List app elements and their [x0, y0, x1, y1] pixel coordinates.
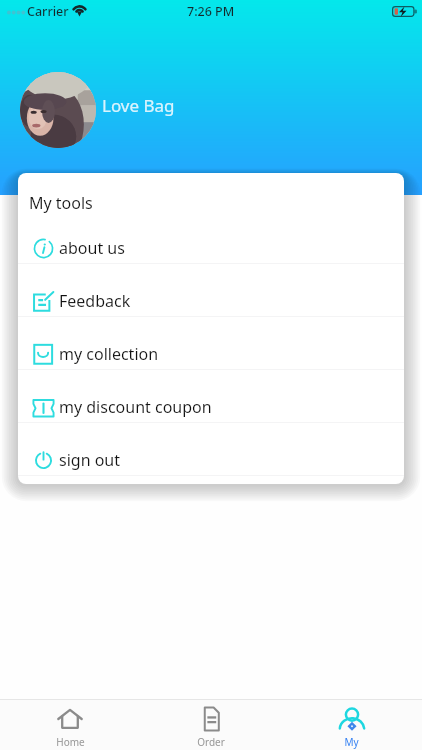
- staticText: sign out: [59, 449, 121, 471]
- staticText: my discount coupon: [59, 396, 212, 418]
- button[interactable]: my discount coupon: [18, 370, 404, 423]
- staticText: My tools: [29, 192, 93, 214]
- button[interactable]: Home: [0, 700, 140, 750]
- staticText: my collection: [59, 343, 159, 365]
- button[interactable]: about us: [18, 211, 404, 264]
- button[interactable]: Order: [140, 700, 281, 750]
- staticText: 7:26 PM: [187, 3, 235, 20]
- button[interactable]: sign out: [18, 423, 404, 476]
- staticText: Feedback: [59, 290, 131, 312]
- staticText: My: [344, 735, 359, 749]
- button[interactable]: My: [281, 700, 422, 750]
- staticText: Love Bag: [102, 94, 175, 117]
- staticText: Home: [56, 735, 85, 749]
- staticText: about us: [59, 237, 125, 259]
- staticText: Carrier: [27, 3, 69, 20]
- button[interactable]: my collection: [18, 317, 404, 370]
- button[interactable]: Profile photo: [20, 72, 96, 148]
- button[interactable]: Feedback: [18, 264, 404, 317]
- staticText: Order: [197, 735, 225, 749]
